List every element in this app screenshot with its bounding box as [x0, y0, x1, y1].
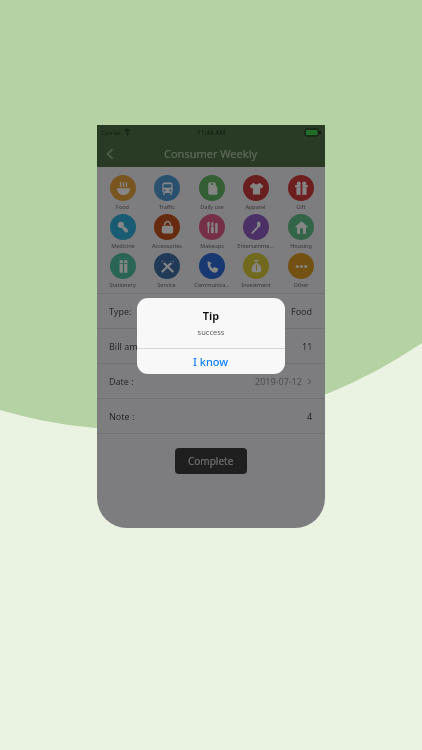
staticText: Date :: [109, 375, 134, 387]
staticText: Note :: [109, 410, 135, 422]
staticText: Type:: [109, 305, 132, 317]
staticText: 2019-07-12: [255, 375, 302, 387]
button[interactable]: Stationery: [101, 251, 144, 290]
button[interactable]: Food: [101, 173, 144, 212]
staticText: Medicine: [111, 242, 135, 249]
staticText: Food: [291, 305, 313, 317]
staticText: Accessories: [152, 242, 182, 249]
staticText: Service: [157, 281, 176, 288]
staticText: Traffic: [159, 203, 175, 210]
button[interactable]: Bill amount :: [97, 329, 325, 363]
button[interactable]: Back: [97, 141, 123, 167]
staticText: Food: [116, 203, 129, 210]
staticText: 11:44 AM: [197, 128, 226, 137]
staticText: Daily use: [200, 203, 224, 210]
staticText: Investment: [241, 281, 271, 288]
button[interactable]: Other: [279, 251, 322, 290]
button[interactable]: Communica…: [190, 251, 233, 290]
staticText: Communica…: [194, 281, 230, 288]
staticText: Entertainme…: [237, 242, 274, 249]
button[interactable]: Makeups: [190, 212, 233, 251]
staticText: Consumer Weekly: [164, 146, 258, 161]
button[interactable]: Date :: [97, 364, 325, 398]
button[interactable]: I know: [137, 349, 285, 374]
button[interactable]: Service: [145, 251, 188, 290]
button[interactable]: Type:: [97, 294, 325, 328]
staticText: success: [137, 327, 285, 337]
staticText: Stationery: [109, 281, 136, 288]
staticText: Apparel: [245, 203, 266, 210]
staticText: 4: [307, 410, 313, 422]
staticText: Gift: [296, 203, 306, 210]
button[interactable]: Accessories: [145, 212, 188, 251]
staticText: I know: [193, 354, 229, 369]
button[interactable]: Note :: [97, 399, 325, 433]
staticText: Complete: [188, 454, 234, 468]
button[interactable]: Traffic: [145, 173, 188, 212]
staticText: Bill amount :: [109, 340, 163, 352]
button[interactable]: Gift: [279, 173, 322, 212]
button[interactable]: Apparel: [234, 173, 277, 212]
staticText: Tip: [137, 308, 285, 323]
staticText: Housing: [290, 242, 312, 249]
button[interactable]: Housing: [279, 212, 322, 251]
staticText: Makeups: [200, 242, 224, 249]
staticText: Other: [293, 281, 309, 288]
button[interactable]: Complete: [175, 448, 247, 474]
button[interactable]: Daily use: [190, 173, 233, 212]
button[interactable]: Entertainme…: [234, 212, 277, 251]
button[interactable]: Investment: [234, 251, 277, 290]
button[interactable]: Medicine: [101, 212, 144, 251]
staticText: Carrier: [101, 129, 121, 137]
staticText: 11: [302, 340, 313, 352]
